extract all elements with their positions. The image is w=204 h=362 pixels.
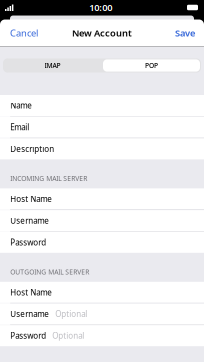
button[interactable]: Name <box>0 95 204 116</box>
button[interactable]: Host Name <box>0 282 204 303</box>
staticText: 10:00 <box>89 1 112 14</box>
button[interactable]: Host Name <box>0 188 204 209</box>
button[interactable]: POP <box>102 58 201 73</box>
button[interactable]: Cancel <box>7 23 41 43</box>
button[interactable]: Username <box>0 210 204 231</box>
staticText: Password <box>10 330 46 341</box>
staticText: Cancel <box>10 27 38 39</box>
button[interactable]: Email <box>0 117 204 138</box>
staticText: OUTGOING MAIL SERVER <box>10 267 89 276</box>
staticText: Optional <box>52 330 84 341</box>
staticText: Host Name <box>10 194 52 204</box>
button[interactable]: Save <box>172 23 198 43</box>
staticText: Email <box>10 122 29 132</box>
staticText: IMAP <box>44 61 60 70</box>
staticText: POP <box>145 61 158 70</box>
staticText: Password <box>10 237 46 248</box>
staticText: Username <box>10 309 49 319</box>
staticText: Description <box>10 144 54 154</box>
button[interactable]: Description <box>0 138 204 159</box>
staticText: Name <box>10 100 32 111</box>
staticText: Optional <box>55 309 87 319</box>
button[interactable]: IMAP <box>3 58 102 73</box>
staticText: Username <box>10 215 49 226</box>
staticText: Save <box>175 27 195 39</box>
staticText: Host Name <box>10 287 52 298</box>
staticText: New Account <box>72 27 132 39</box>
button[interactable]: Password <box>0 232 204 253</box>
button[interactable]: Username <box>0 303 204 324</box>
staticText: INCOMING MAIL SERVER <box>10 174 87 183</box>
button[interactable]: Password <box>0 325 204 346</box>
